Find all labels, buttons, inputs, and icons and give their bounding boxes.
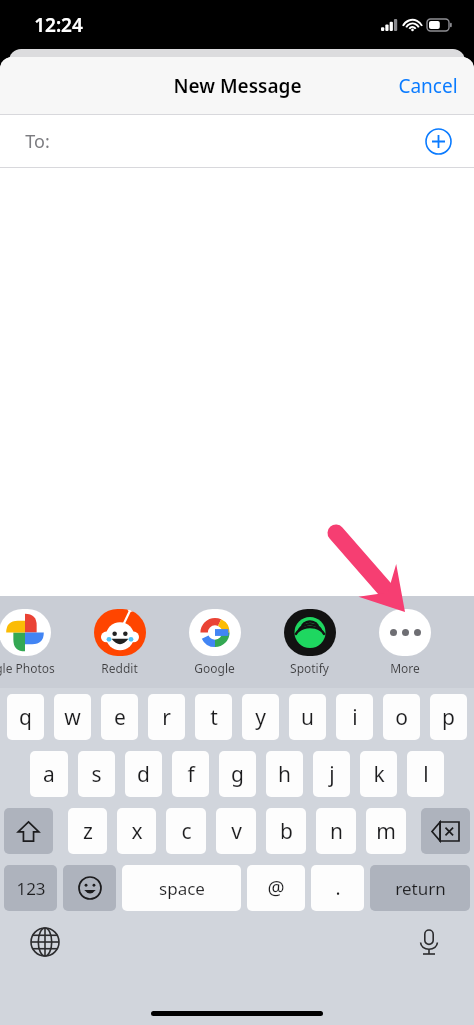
staticText: m — [376, 817, 396, 846]
button[interactable]: e — [101, 694, 138, 740]
staticText: Reddit — [101, 660, 138, 676]
staticText: . — [335, 875, 341, 901]
button[interactable]: . — [311, 865, 364, 911]
button[interactable]: b — [266, 808, 306, 854]
staticText: 12:24 — [34, 12, 83, 38]
button[interactable]: Dictate — [414, 927, 444, 957]
staticText: w — [64, 703, 81, 732]
button[interactable]: gle Photos — [0, 596, 72, 688]
staticText: c — [181, 817, 192, 846]
staticText: g — [231, 760, 244, 789]
staticText: To: — [25, 129, 50, 154]
staticText: n — [330, 817, 343, 846]
staticText: x — [131, 817, 143, 846]
staticText: y — [255, 703, 266, 732]
button[interactable]: Reddit — [72, 596, 167, 688]
staticText: v — [231, 817, 242, 846]
button[interactable]: h — [266, 751, 303, 797]
button[interactable]: f — [172, 751, 209, 797]
button[interactable]: n — [316, 808, 356, 854]
staticText: Google — [194, 660, 235, 676]
staticText: p — [442, 703, 455, 732]
button[interactable]: a — [30, 751, 68, 797]
button[interactable]: y — [242, 694, 279, 740]
button[interactable]: x — [117, 808, 156, 854]
staticText: gle Photos — [0, 660, 55, 676]
other: More apps — [379, 609, 431, 656]
staticText: e — [114, 703, 126, 732]
staticText: r — [162, 703, 171, 732]
staticText: space — [159, 877, 205, 900]
staticText: Cancel — [398, 73, 458, 99]
button[interactable]: space — [122, 865, 241, 911]
staticText: New Message — [173, 73, 302, 99]
button[interactable]: k — [360, 751, 397, 797]
button[interactable]: return — [370, 865, 470, 911]
button[interactable]: Emoji — [63, 865, 116, 911]
button[interactable]: t — [195, 694, 232, 740]
button[interactable]: c — [166, 808, 206, 854]
button[interactable]: v — [216, 808, 256, 854]
button[interactable]: p — [430, 694, 467, 740]
button[interactable]: Shift — [4, 808, 53, 854]
button[interactable]: m — [366, 808, 406, 854]
staticText: h — [278, 760, 291, 789]
staticText: t — [210, 703, 218, 732]
button[interactable]: d — [125, 751, 162, 797]
button[interactable]: Google — [167, 596, 262, 688]
button[interactable]: 123 — [4, 865, 57, 911]
staticText: b — [280, 817, 293, 846]
button[interactable]: Switch keyboard — [30, 927, 60, 957]
staticText: k — [373, 760, 385, 789]
button[interactable]: l — [407, 751, 444, 797]
staticText: @ — [267, 875, 285, 901]
staticText: o — [395, 703, 408, 732]
staticText: q — [19, 703, 32, 732]
button[interactable]: Spotify — [262, 596, 357, 688]
staticText: return — [395, 877, 446, 900]
button[interactable]: To: — [0, 115, 474, 167]
button[interactable]: j — [313, 751, 350, 797]
staticText: a — [43, 760, 55, 789]
staticText: s — [91, 760, 102, 789]
staticText: u — [301, 703, 314, 732]
button[interactable]: z — [68, 808, 107, 854]
button[interactable]: Backspace — [421, 808, 470, 854]
button[interactable]: @ — [247, 865, 305, 911]
button[interactable]: q — [7, 694, 44, 740]
button[interactable]: r — [148, 694, 185, 740]
staticText: z — [83, 817, 93, 846]
staticText: f — [187, 760, 195, 789]
button[interactable]: u — [289, 694, 326, 740]
button[interactable]: i — [336, 694, 373, 740]
staticText: Spotify — [290, 660, 329, 676]
button[interactable]: w — [54, 694, 91, 740]
staticText: j — [329, 760, 335, 789]
staticText: 123 — [16, 877, 46, 900]
staticText: l — [423, 760, 429, 789]
button[interactable]: More apps — [357, 596, 452, 688]
button[interactable]: Cancel — [382, 61, 474, 111]
staticText: i — [352, 703, 358, 732]
button[interactable]: s — [78, 751, 115, 797]
staticText: More — [390, 660, 420, 676]
button[interactable]: o — [383, 694, 420, 740]
staticText: d — [137, 760, 150, 789]
button[interactable]: Add contact — [425, 128, 452, 155]
button[interactable]: g — [219, 751, 256, 797]
